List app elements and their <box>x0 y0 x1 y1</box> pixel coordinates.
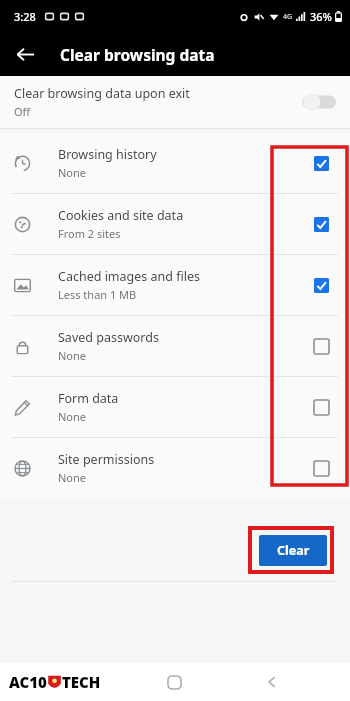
button[interactable]: Checked Cookies and site data <box>306 209 336 239</box>
button[interactable]: Unchecked Saved passwords <box>306 331 336 361</box>
staticText: None <box>58 348 87 363</box>
button[interactable]: Saved passwords <box>0 316 350 376</box>
staticText: Cached images and files <box>58 268 200 285</box>
button[interactable]: Back <box>8 37 42 71</box>
staticText: 4G <box>283 12 293 22</box>
staticText: None <box>58 470 87 485</box>
button[interactable]: Browsing history <box>0 133 350 193</box>
button[interactable]: Cached images and files <box>0 255 350 315</box>
button[interactable]: Cookies and site data <box>0 194 350 254</box>
button[interactable]: Form data <box>0 377 350 437</box>
button[interactable]: Clear browsing data upon exit <box>0 76 350 128</box>
button[interactable]: Unchecked Site permissions <box>306 453 336 483</box>
staticText: Off <box>14 104 31 119</box>
button[interactable]: Unchecked Form data <box>306 392 336 422</box>
staticText: Saved passwords <box>58 329 159 346</box>
staticText: 3:28 <box>14 9 36 24</box>
staticText: Form data <box>58 390 119 407</box>
staticText: Site permissions <box>58 451 155 468</box>
staticText: 36% <box>310 9 332 24</box>
staticText: None <box>58 409 87 424</box>
button[interactable]: Clear <box>259 535 327 566</box>
staticText: None <box>58 165 87 180</box>
staticText: From 2 sites <box>58 226 121 241</box>
staticText: AC10 <box>9 672 47 692</box>
staticText: Clear <box>277 542 310 559</box>
staticText: Clear browsing data <box>60 44 215 65</box>
button[interactable]: Checked Cached images and files <box>306 270 336 300</box>
button[interactable]: Back <box>257 667 287 697</box>
staticText: TECH <box>62 672 101 692</box>
staticText: Browsing history <box>58 146 157 163</box>
button[interactable]: Site permissions <box>0 438 350 498</box>
button[interactable]: Home <box>159 667 189 697</box>
staticText: Cookies and site data <box>58 207 184 224</box>
staticText: Clear browsing data upon exit <box>14 85 190 102</box>
staticText: Less than 1 MB <box>58 287 137 302</box>
button[interactable]: Checked Browsing history <box>306 148 336 178</box>
